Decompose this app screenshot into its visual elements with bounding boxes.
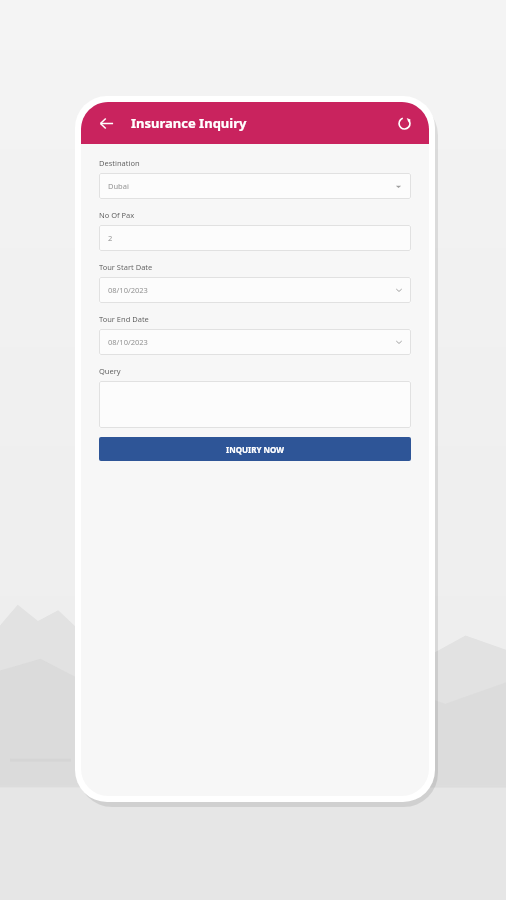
staticText: Tour End Date bbox=[99, 314, 149, 324]
staticText: Tour Start Date bbox=[99, 262, 153, 272]
staticText: INQUIRY NOW bbox=[226, 444, 284, 455]
staticText: Insurance Inquiry bbox=[131, 114, 247, 132]
button[interactable]: 2 bbox=[99, 225, 411, 251]
button[interactable]: INQUIRY NOW bbox=[99, 437, 411, 461]
button[interactable]: Refresh bbox=[391, 110, 417, 136]
button[interactable] bbox=[99, 381, 411, 428]
button[interactable]: Back bbox=[93, 110, 119, 136]
staticText: 08/10/2023 bbox=[108, 337, 148, 347]
staticText: Query bbox=[99, 366, 121, 376]
staticText: Destination bbox=[99, 158, 140, 168]
staticText: 08/10/2023 bbox=[108, 285, 148, 295]
button[interactable]: Dubai bbox=[99, 173, 411, 199]
staticText: No Of Pax bbox=[99, 210, 135, 220]
button[interactable]: 08/10/2023 bbox=[99, 277, 411, 303]
staticText: 2 bbox=[108, 233, 113, 243]
staticText: Dubai bbox=[108, 181, 129, 191]
button[interactable]: 08/10/2023 bbox=[99, 329, 411, 355]
